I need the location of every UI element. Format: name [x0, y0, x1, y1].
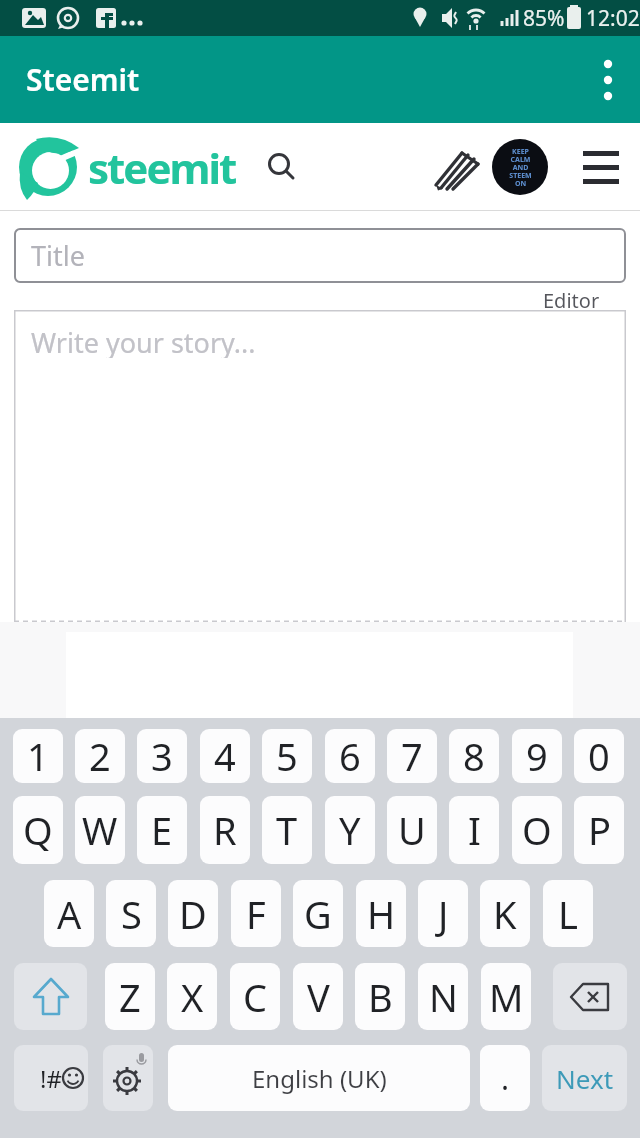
- button[interactable]: 3: [137, 729, 187, 783]
- button[interactable]: [553, 963, 627, 1030]
- button[interactable]: 8: [449, 729, 499, 783]
- button[interactable]: C: [230, 963, 280, 1030]
- button[interactable]: KEEP CALM AND STEEM ON: [492, 139, 548, 195]
- button[interactable]: Title: [14, 228, 626, 283]
- staticText: !#: [40, 1062, 62, 1095]
- button[interactable]: .: [480, 1045, 530, 1111]
- button[interactable]: [258, 145, 304, 189]
- staticText: U: [398, 804, 426, 856]
- staticText: T: [276, 804, 298, 856]
- button[interactable]: 2: [75, 729, 125, 783]
- staticText: R: [213, 804, 237, 856]
- staticText: 7: [401, 730, 423, 782]
- button[interactable]: 6: [325, 729, 375, 783]
- button[interactable]: G: [293, 880, 343, 947]
- button[interactable]: A: [44, 880, 94, 947]
- button[interactable]: F: [231, 880, 281, 947]
- staticText: 9: [526, 730, 548, 782]
- staticText: F: [246, 888, 266, 940]
- staticText: Title: [31, 237, 85, 274]
- staticText: Editor: [543, 287, 600, 311]
- staticText: L: [558, 888, 578, 940]
- button[interactable]: K: [480, 880, 530, 947]
- button[interactable]: 1: [13, 729, 63, 783]
- button[interactable]: English (UK): [168, 1045, 470, 1111]
- staticText: V: [307, 971, 330, 1023]
- button[interactable]: 5: [262, 729, 312, 783]
- button[interactable]: [580, 147, 622, 187]
- button[interactable]: X: [167, 963, 217, 1030]
- staticText: Steemit: [26, 59, 140, 100]
- staticText: B: [368, 971, 393, 1023]
- staticText: D: [179, 888, 207, 940]
- button[interactable]: I: [449, 796, 499, 864]
- staticText: I: [468, 804, 481, 856]
- button[interactable]: [14, 963, 87, 1030]
- staticText: 0: [588, 730, 610, 782]
- button[interactable]: S: [106, 880, 156, 947]
- staticText: W: [82, 804, 118, 856]
- button[interactable]: E: [137, 796, 187, 864]
- button[interactable]: Q: [13, 796, 63, 864]
- staticText: E: [151, 804, 173, 856]
- button[interactable]: J: [418, 880, 468, 947]
- button[interactable]: R: [200, 796, 250, 864]
- button[interactable]: W: [75, 796, 125, 864]
- button[interactable]: O: [512, 796, 562, 864]
- button[interactable]: N: [418, 963, 468, 1030]
- button[interactable]: P: [574, 796, 624, 864]
- staticText: 6: [339, 730, 361, 782]
- staticText: 8: [463, 730, 485, 782]
- button[interactable]: 0: [574, 729, 624, 783]
- button[interactable]: [103, 1045, 153, 1111]
- staticText: 85%: [523, 4, 565, 33]
- staticText: 2: [89, 730, 111, 782]
- staticText: A: [57, 888, 82, 940]
- staticText: Next: [556, 1061, 614, 1096]
- button[interactable]: V: [293, 963, 343, 1030]
- button[interactable]: D: [168, 880, 218, 947]
- staticText: KEEP CALM AND STEEM ON: [509, 147, 532, 188]
- button[interactable]: [586, 56, 630, 104]
- staticText: Z: [119, 971, 141, 1023]
- staticText: 12:02: [586, 4, 640, 33]
- staticText: C: [243, 971, 268, 1023]
- button[interactable]: Write your story...: [14, 310, 626, 622]
- button[interactable]: 4: [200, 729, 250, 783]
- button[interactable]: 9: [512, 729, 562, 783]
- staticText: K: [493, 888, 517, 940]
- staticText: .: [501, 1058, 510, 1099]
- staticText: steemit: [88, 139, 236, 196]
- staticText: H: [367, 888, 396, 940]
- button[interactable]: U: [387, 796, 437, 864]
- staticText: N: [429, 971, 458, 1023]
- staticText: Write your story...: [31, 324, 256, 358]
- button[interactable]: B: [355, 963, 405, 1030]
- button[interactable]: Y: [325, 796, 375, 864]
- button[interactable]: Z: [105, 963, 155, 1030]
- staticText: 5: [276, 730, 298, 782]
- button[interactable]: L: [543, 880, 593, 947]
- staticText: 3: [151, 730, 173, 782]
- staticText: J: [438, 888, 449, 940]
- staticText: 1: [27, 730, 49, 782]
- staticText: P: [588, 804, 611, 856]
- staticText: 4: [214, 730, 236, 782]
- staticText: X: [181, 971, 204, 1023]
- staticText: O: [522, 804, 552, 856]
- button[interactable]: Next: [542, 1045, 627, 1111]
- staticText: Y: [339, 804, 361, 856]
- staticText: M: [489, 971, 524, 1023]
- staticText: Q: [23, 804, 53, 856]
- button[interactable]: 7: [387, 729, 437, 783]
- button[interactable]: [430, 145, 482, 191]
- staticText: English (UK): [252, 1062, 387, 1095]
- button[interactable]: T: [262, 796, 312, 864]
- button[interactable]: H: [356, 880, 406, 947]
- staticText: G: [304, 888, 332, 940]
- staticText: S: [121, 888, 142, 940]
- button[interactable]: M: [481, 963, 531, 1030]
- button[interactable]: !#: [14, 1045, 88, 1111]
